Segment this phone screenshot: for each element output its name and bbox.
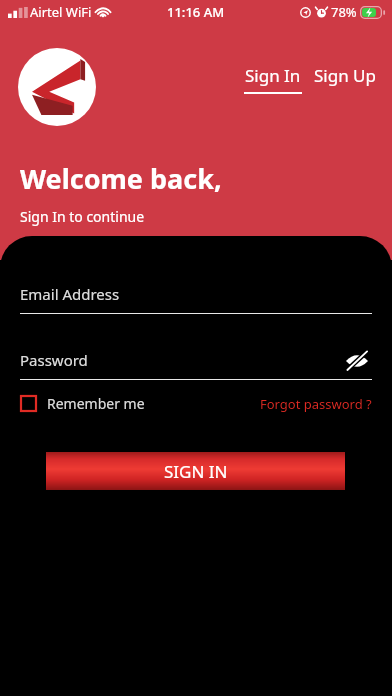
button[interactable]: SIGN IN — [46, 452, 345, 490]
staticText: Welcome back, — [20, 160, 222, 197]
staticText: Forgot password ? — [260, 395, 372, 413]
staticText: Sign Up — [314, 64, 376, 87]
button[interactable]: Password — [20, 350, 372, 380]
button[interactable]: Forgot password ? — [260, 395, 372, 413]
staticText: Sign In — [245, 64, 301, 87]
button[interactable]: Sign Up — [314, 64, 376, 87]
button[interactable]: Email Address — [20, 284, 372, 314]
button[interactable]: Sign In — [244, 64, 302, 94]
button[interactable]: Remember me — [20, 394, 145, 413]
staticText: 11:16 AM — [167, 3, 225, 21]
staticText: 78% — [331, 3, 357, 21]
staticText: Password — [20, 350, 88, 370]
staticText: SIGN IN — [164, 460, 228, 483]
staticText: Sign In to continue — [20, 207, 145, 226]
staticText: Remember me — [47, 394, 145, 413]
staticText: Email Address — [20, 284, 120, 304]
staticText: Airtel WiFi — [30, 3, 92, 21]
button[interactable]: Show password — [342, 346, 372, 376]
